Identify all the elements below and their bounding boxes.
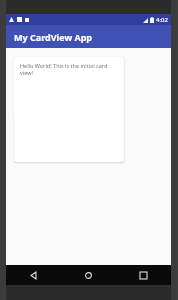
button[interactable]: Hello World! This is the initial card vi… [14,57,124,162]
button[interactable]: Home [61,265,116,285]
staticText: Hello World! This is the initial card vi… [20,62,119,76]
button[interactable]: My CardView App [6,25,171,48]
staticText: 4:02 [156,16,168,24]
button[interactable]: Back [6,265,61,285]
button[interactable]: Recent apps [116,265,171,285]
staticText: My CardView App [14,31,93,43]
